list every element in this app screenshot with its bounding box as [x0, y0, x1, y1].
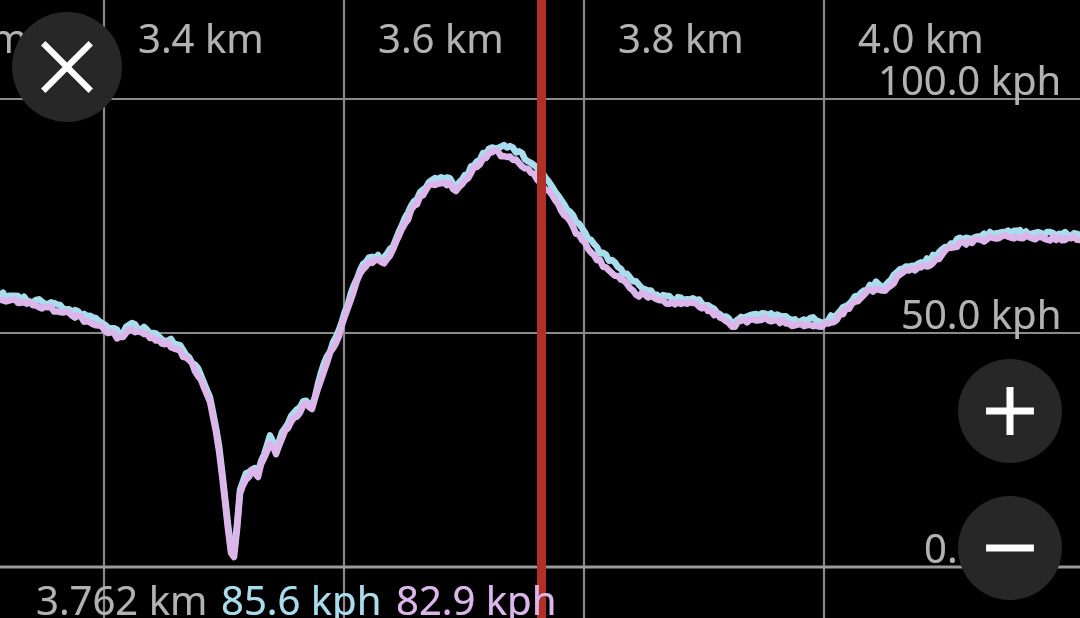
button[interactable]: Close — [12, 12, 122, 122]
button[interactable]: Zoom in — [958, 359, 1062, 463]
button[interactable]: Zoom out — [958, 496, 1062, 600]
